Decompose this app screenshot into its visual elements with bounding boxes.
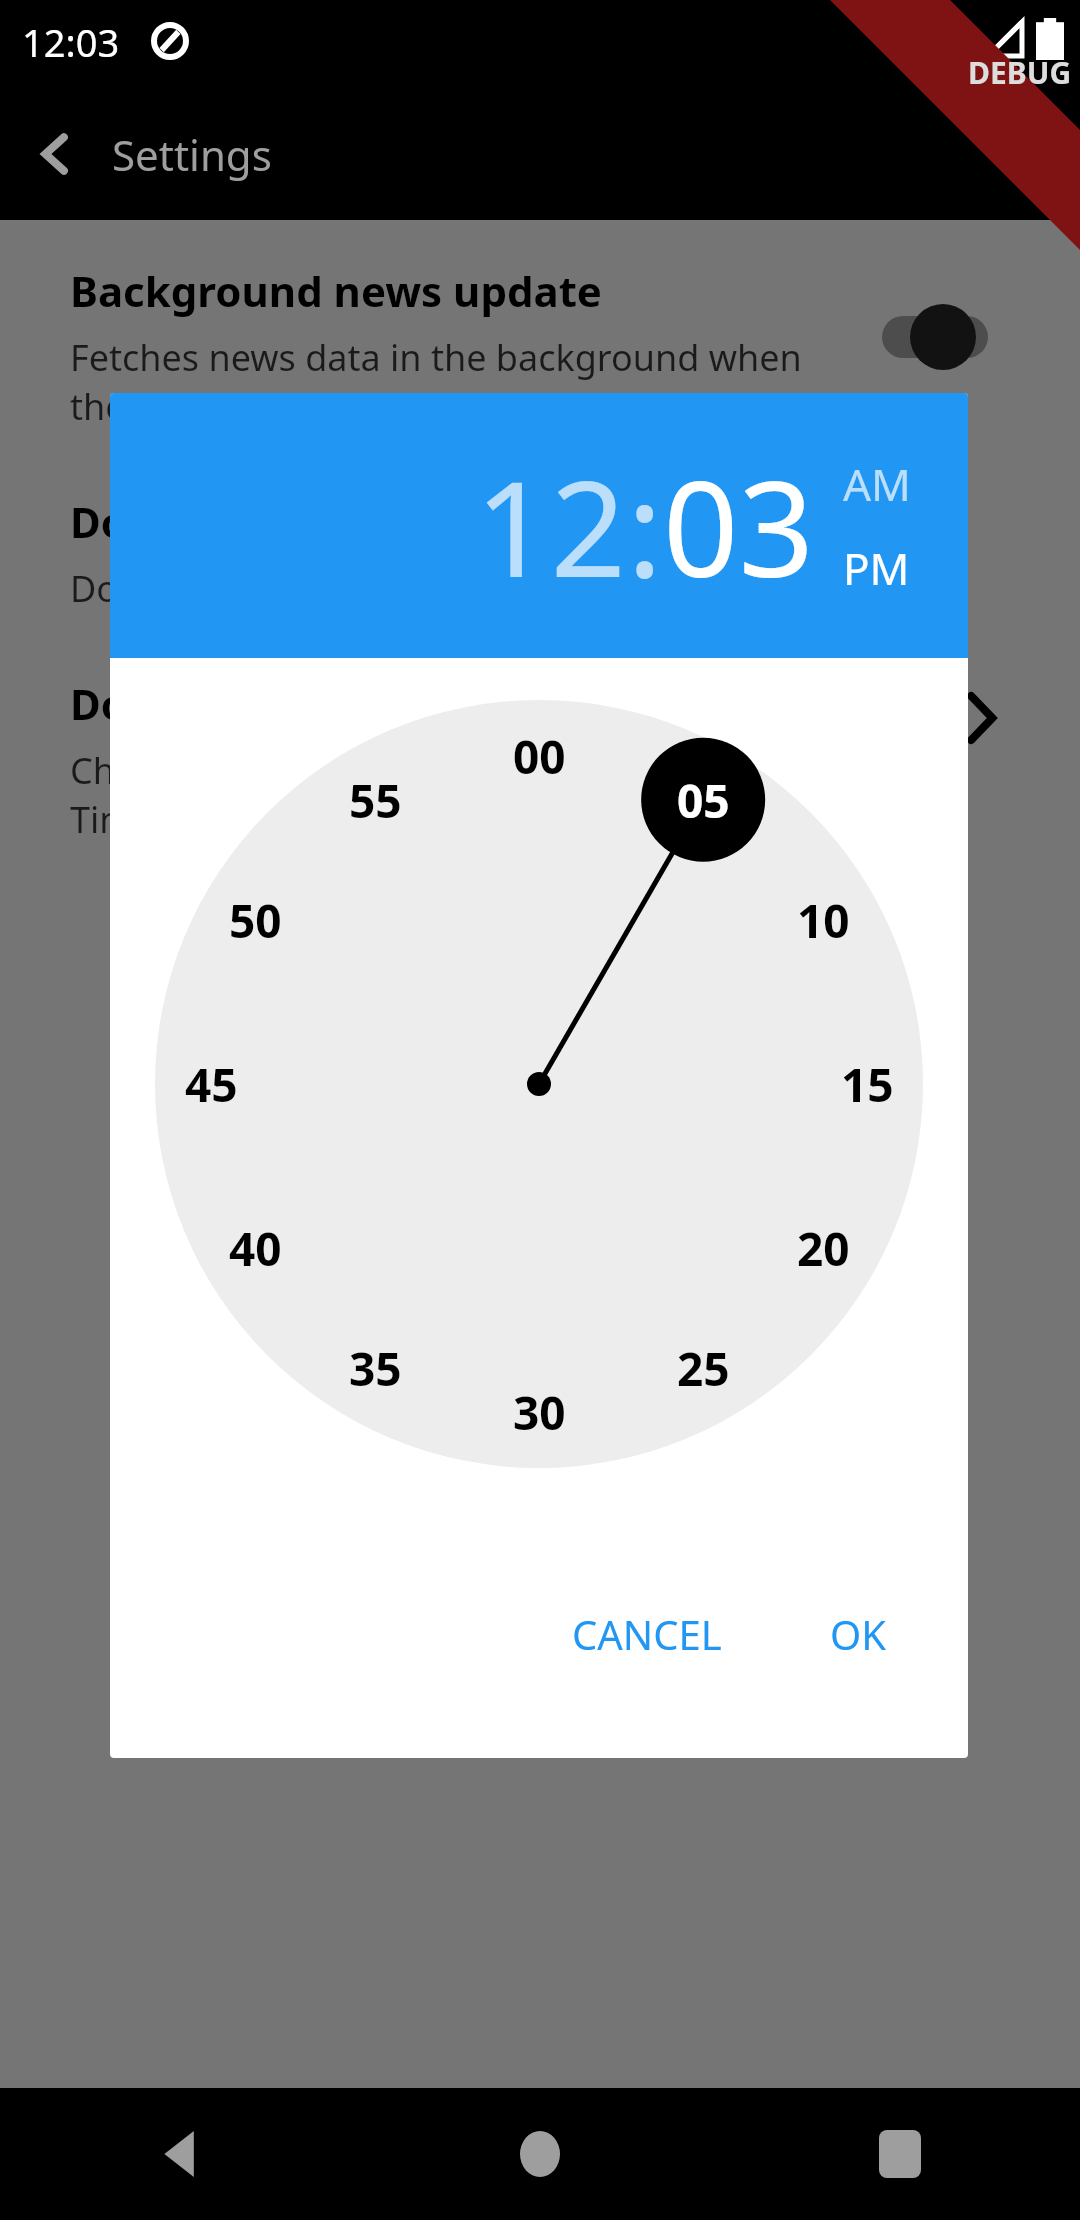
staticText: Do	[70, 493, 127, 550]
staticText: Do	[70, 675, 127, 732]
button[interactable]: Clock dial	[155, 700, 923, 1468]
staticText: Background news update	[70, 262, 602, 319]
staticText: 35	[349, 1337, 402, 1400]
staticText: 50	[229, 889, 282, 952]
button[interactable]: 05	[648, 766, 758, 834]
staticText: Settings	[112, 126, 272, 183]
staticText: 05	[677, 769, 730, 832]
button[interactable]: Home	[360, 2088, 720, 2220]
staticText: 20	[797, 1217, 850, 1280]
staticText: 10	[797, 889, 850, 952]
button[interactable]: Toggle	[882, 316, 988, 358]
staticText: AM	[843, 454, 912, 514]
staticText: 15	[841, 1053, 894, 1116]
staticText: OK	[830, 1607, 886, 1661]
button[interactable]: 35	[320, 1334, 430, 1402]
staticText: 40	[229, 1217, 282, 1280]
staticText: :	[627, 436, 663, 616]
button[interactable]: 40	[200, 1214, 310, 1282]
staticText: Do	[70, 564, 119, 613]
button[interactable]: 50	[200, 886, 310, 954]
button[interactable]: 03	[663, 436, 815, 616]
button[interactable]: 20	[768, 1214, 878, 1282]
staticText: Fetches news data in the background when	[70, 333, 802, 382]
staticText: Ch	[70, 746, 116, 795]
button[interactable]: 15	[812, 1050, 922, 1118]
staticText: the phone is on charge	[70, 382, 459, 431]
button[interactable]: OK	[804, 1585, 912, 1683]
staticText: 12	[475, 436, 627, 616]
button[interactable]: Recent apps	[720, 2088, 1080, 2220]
staticText: Tim	[70, 795, 133, 844]
button[interactable]: 55	[320, 766, 430, 834]
button[interactable]: AM	[843, 454, 912, 514]
staticText: 30	[513, 1381, 566, 1444]
button[interactable]: 10	[768, 886, 878, 954]
staticText: CANCEL	[572, 1607, 722, 1661]
staticText: PM	[843, 538, 910, 598]
staticText: 00	[513, 725, 566, 788]
staticText: 25	[677, 1337, 730, 1400]
button[interactable]: More	[958, 696, 1002, 740]
button[interactable]: Back	[0, 2088, 360, 2220]
staticText: 12:03	[22, 16, 120, 68]
staticText: 45	[185, 1053, 238, 1116]
button[interactable]: 25	[648, 1334, 758, 1402]
staticText: DEBUG	[968, 52, 1072, 93]
button[interactable]: 00	[484, 722, 594, 790]
button[interactable]: 45	[156, 1050, 266, 1118]
button[interactable]: Navigate up	[0, 108, 112, 200]
button[interactable]: PM	[843, 538, 910, 598]
button[interactable]: CANCEL	[546, 1585, 748, 1683]
button[interactable]: 12	[475, 436, 627, 616]
button[interactable]: 30	[484, 1378, 594, 1446]
staticText: 55	[349, 769, 402, 832]
staticText: 03	[663, 436, 815, 616]
